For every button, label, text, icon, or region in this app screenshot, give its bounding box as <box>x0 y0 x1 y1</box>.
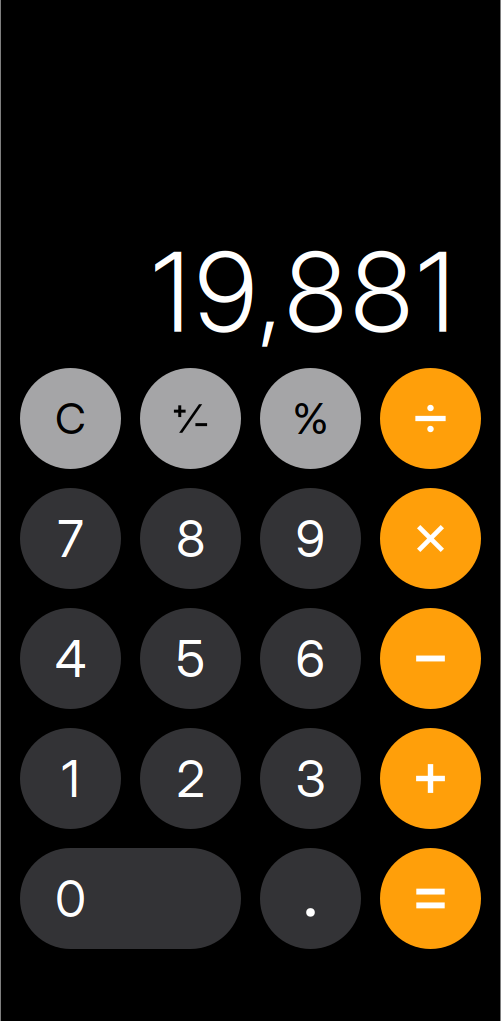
button[interactable]: Add <box>380 728 481 829</box>
staticText: 8 <box>176 508 205 569</box>
button[interactable]: Subtract <box>380 608 481 709</box>
button[interactable]: 1 <box>20 728 121 829</box>
staticText: 9 <box>295 508 325 569</box>
button[interactable]: Divide <box>380 368 481 469</box>
staticText: 19,881 <box>152 226 455 358</box>
button[interactable]: 8 <box>140 488 241 589</box>
button[interactable]: Equals <box>380 848 481 949</box>
button[interactable]: Plus minus <box>140 368 241 469</box>
staticText: 7 <box>57 508 83 569</box>
button[interactable]: 7 <box>20 488 121 589</box>
button[interactable]: 6 <box>260 608 361 709</box>
button[interactable]: 9 <box>260 488 361 589</box>
staticText: % <box>292 393 328 444</box>
button[interactable]: % <box>260 368 361 469</box>
button[interactable]: 5 <box>140 608 241 709</box>
button[interactable]: Decimal point <box>260 848 361 949</box>
staticText: 5 <box>176 628 205 689</box>
button[interactable]: 0 <box>20 848 241 949</box>
staticText: 4 <box>55 628 86 689</box>
button[interactable]: Multiply <box>380 488 481 589</box>
staticText: 6 <box>295 628 325 689</box>
staticText: 1 <box>61 748 79 809</box>
button[interactable]: 4 <box>20 608 121 709</box>
button[interactable]: C <box>20 368 121 469</box>
staticText: C <box>55 393 86 444</box>
button[interactable]: 2 <box>140 728 241 829</box>
staticText: 2 <box>176 748 204 809</box>
staticText: 0 <box>55 868 86 929</box>
button[interactable]: 3 <box>260 728 361 829</box>
staticText: 3 <box>295 748 325 809</box>
